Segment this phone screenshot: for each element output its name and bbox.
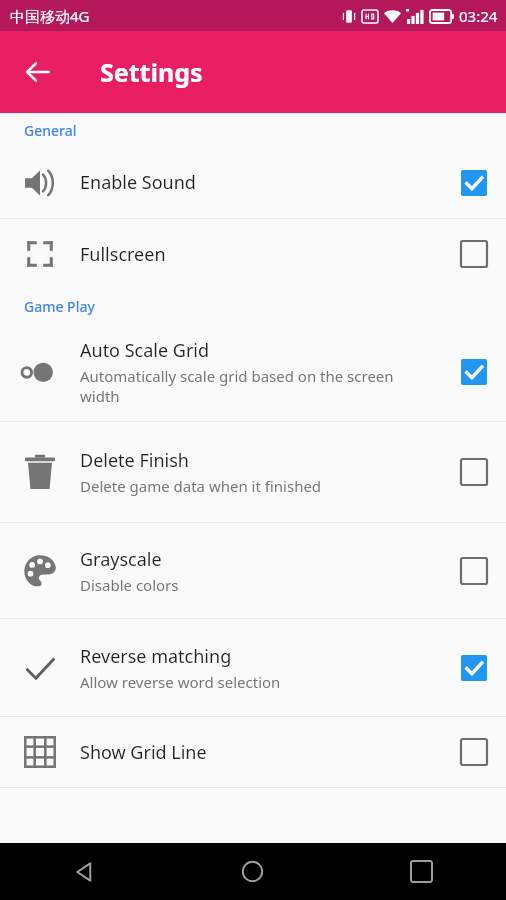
staticText: Allow reverse word selection: [80, 672, 281, 692]
staticText: General: [24, 121, 77, 140]
staticText: Delete Finish: [80, 448, 189, 473]
staticText: Delete game data when it finished: [80, 476, 322, 496]
button[interactable]: Back: [0, 843, 168, 900]
button[interactable]: Fullscreen: [0, 219, 506, 289]
staticText: 03:24: [459, 6, 498, 26]
button[interactable]: Home: [168, 843, 337, 900]
button[interactable]: Delete Finish: [0, 422, 506, 522]
button[interactable]: Enable Sound: [0, 147, 506, 218]
button[interactable]: Grayscale: [0, 523, 506, 618]
staticText: 中国移动4G: [10, 6, 90, 26]
button[interactable]: Unchecked: [454, 234, 494, 274]
button[interactable]: Back: [12, 46, 64, 98]
staticText: Grayscale: [80, 547, 162, 572]
staticText: Reverse matching: [80, 644, 232, 669]
button[interactable]: Unchecked: [454, 732, 494, 772]
staticText: Game Play: [24, 297, 95, 316]
button[interactable]: Checked: [454, 648, 494, 688]
button[interactable]: Unchecked: [454, 452, 494, 492]
staticText: Settings: [100, 55, 203, 89]
button[interactable]: Checked: [454, 163, 494, 203]
button[interactable]: Unchecked: [454, 551, 494, 591]
staticText: Fullscreen: [80, 242, 166, 267]
staticText: Automatically scale grid based on the sc…: [80, 366, 430, 406]
button[interactable]: Checked: [454, 352, 494, 392]
staticText: Show Grid Line: [80, 740, 207, 765]
button[interactable]: Reverse matching: [0, 619, 506, 716]
staticText: Auto Scale Grid: [80, 338, 210, 363]
button[interactable]: Recent apps: [337, 843, 506, 900]
staticText: Enable Sound: [80, 170, 196, 195]
button[interactable]: Show Grid Line: [0, 717, 506, 787]
button[interactable]: Auto Scale Grid: [0, 323, 506, 421]
staticText: Disable colors: [80, 575, 179, 595]
